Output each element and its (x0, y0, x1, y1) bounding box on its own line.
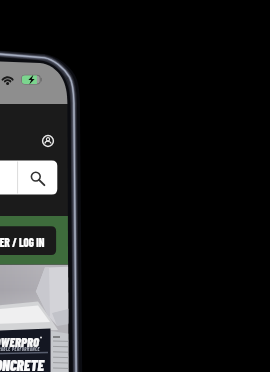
button[interactable]: PowerPro store app shown on a phone (0, 0, 270, 372)
